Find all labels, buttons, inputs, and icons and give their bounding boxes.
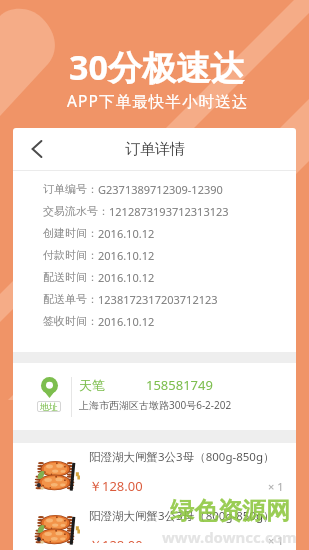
staticText: 阳澄湖大闸蟹3公3母（800g-850g） — [89, 449, 268, 465]
staticText: www.downcc.com — [162, 527, 297, 547]
staticText: ￥128.00 — [89, 536, 143, 543]
staticText: 阳澄湖大闸蟹3公3母（800g-850g） — [89, 508, 268, 524]
staticText: × 1 — [268, 479, 284, 494]
staticText: 1212873193712313123 — [109, 204, 229, 219]
staticText: 地址 — [40, 401, 58, 412]
button[interactable]: 阳澄湖大闸蟹3公3母（800g-850g） — [13, 443, 296, 508]
staticText: 付款时间： — [43, 248, 98, 262]
staticText: 绿色资源网 — [170, 496, 290, 526]
staticText: 2016.10.12 — [98, 226, 155, 241]
button[interactable]: 阳澄湖大闸蟹3公3母（800g-850g） — [13, 508, 296, 550]
staticText: 配送单号： — [43, 292, 98, 306]
staticText: 订单详情 — [125, 140, 185, 159]
staticText: 158581749 — [146, 376, 213, 394]
staticText: 配送时间： — [43, 270, 98, 284]
button[interactable]: 返回 — [13, 128, 61, 170]
staticText: 签收时间： — [43, 314, 98, 328]
staticText: 创建时间： — [43, 226, 98, 240]
staticText: 2016.10.12 — [98, 248, 155, 263]
staticText: 30分极速达 — [69, 44, 244, 90]
staticText: 上海市西湖区古墩路300号6-2-202 — [79, 398, 232, 412]
staticText: 天笔 — [79, 377, 105, 393]
button[interactable]: 地址 — [13, 363, 296, 430]
staticText: 2016.10.12 — [98, 314, 155, 329]
staticText: 交易流水号： — [43, 204, 109, 218]
staticText: 订单编号： — [43, 182, 98, 196]
staticText: 2016.10.12 — [98, 270, 155, 285]
staticText: 1238172317203712123 — [98, 292, 218, 307]
staticText: G2371389712309-12390 — [98, 182, 223, 197]
staticText: APP下单最快半小时送达 — [67, 90, 249, 111]
staticText: × 1 — [268, 533, 284, 548]
staticText: ￥128.00 — [89, 477, 143, 495]
